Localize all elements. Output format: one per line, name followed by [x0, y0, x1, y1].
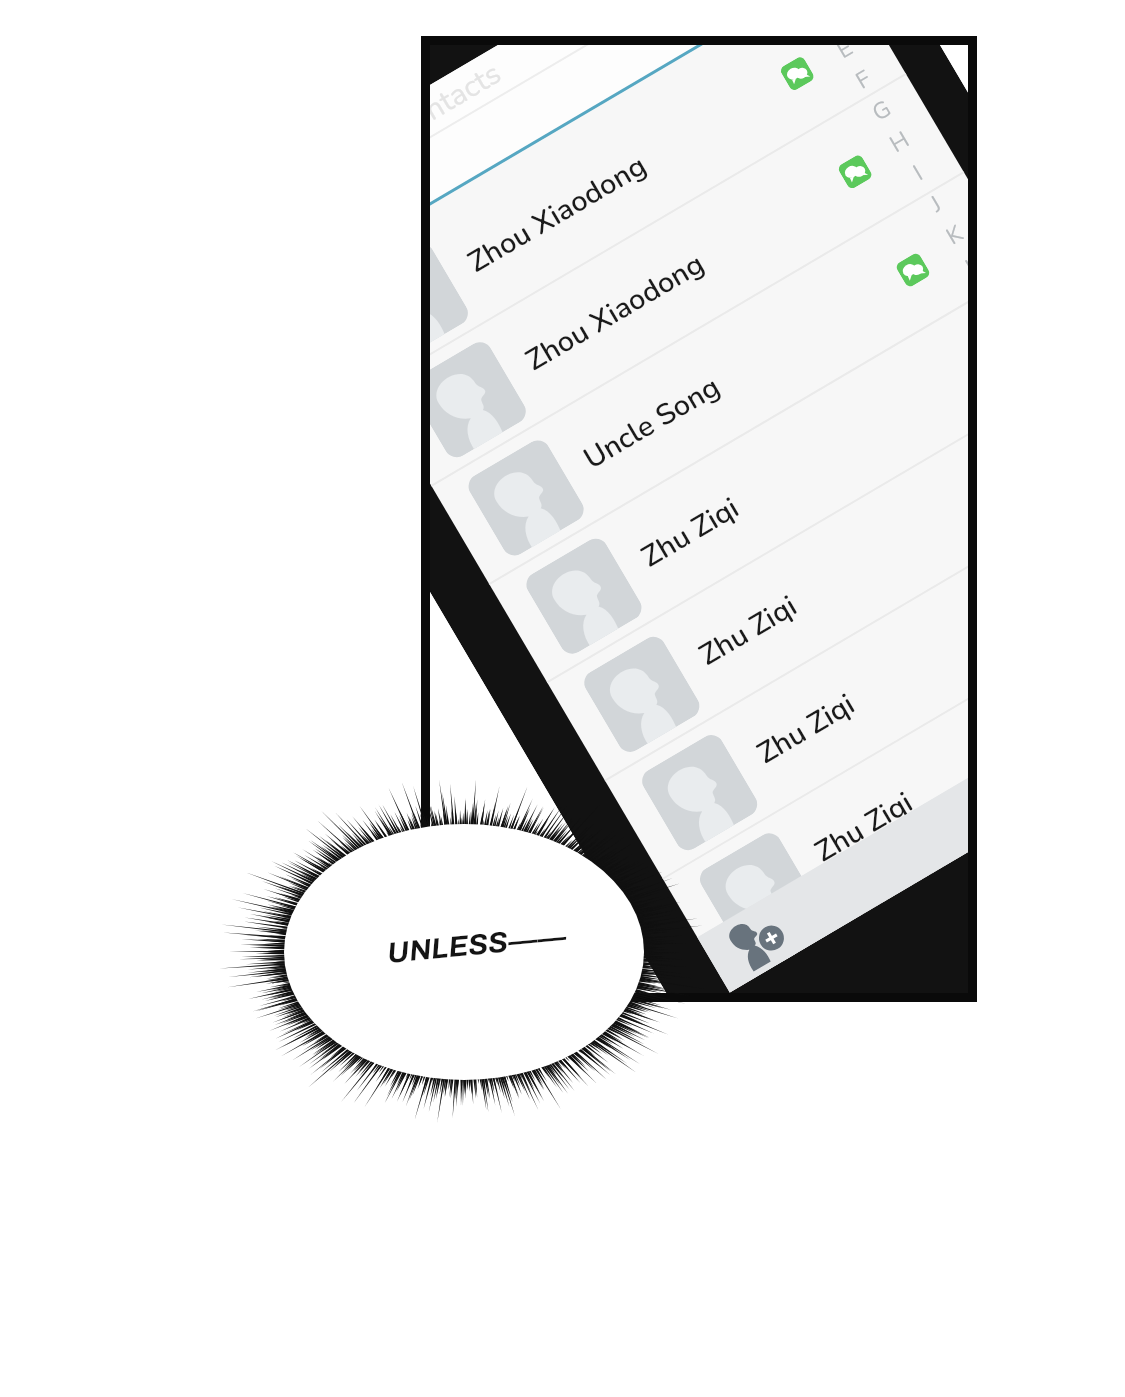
staticText: Contacts	[386, 53, 509, 149]
button[interactable]: Zhu Ziqi	[663, 566, 1125, 978]
staticText: Uncle Song	[576, 367, 728, 479]
staticText: H	[884, 124, 915, 160]
button[interactable]: Zhu Ziqi	[605, 468, 1125, 880]
staticText: Zhu Ziqi	[634, 488, 747, 577]
staticText: J	[925, 189, 947, 219]
staticText: Zhu Ziqi	[750, 685, 862, 774]
staticText: G	[867, 93, 897, 128]
staticText: K	[941, 218, 969, 252]
staticText: I	[907, 158, 928, 188]
staticText: L	[960, 249, 987, 282]
staticText: Zhu Ziqi	[692, 587, 805, 675]
staticText: F	[850, 63, 877, 96]
button[interactable]: Zhou Xiaodong	[374, 75, 964, 487]
button[interactable]: Zhu Ziqi	[490, 271, 1080, 683]
button[interactable]: Uncle Song	[432, 173, 1022, 585]
button[interactable]: Add contact	[697, 624, 1125, 992]
staticText: M	[974, 279, 1007, 316]
button[interactable]: Zhu Ziqi	[548, 369, 1125, 781]
staticText: E	[831, 32, 859, 66]
staticText: Zhu Ziqi	[808, 783, 920, 872]
button[interactable]: Zhou Xiaodong	[316, 0, 906, 388]
staticText: Zhou Xiaodong	[461, 146, 654, 282]
staticText: UNLESS——	[386, 921, 568, 970]
button[interactable]: Zhu Ziqi	[721, 664, 1125, 992]
staticText: Zhu Ziqi	[847, 849, 948, 918]
staticText: Zhou Xiaodong	[519, 244, 712, 381]
